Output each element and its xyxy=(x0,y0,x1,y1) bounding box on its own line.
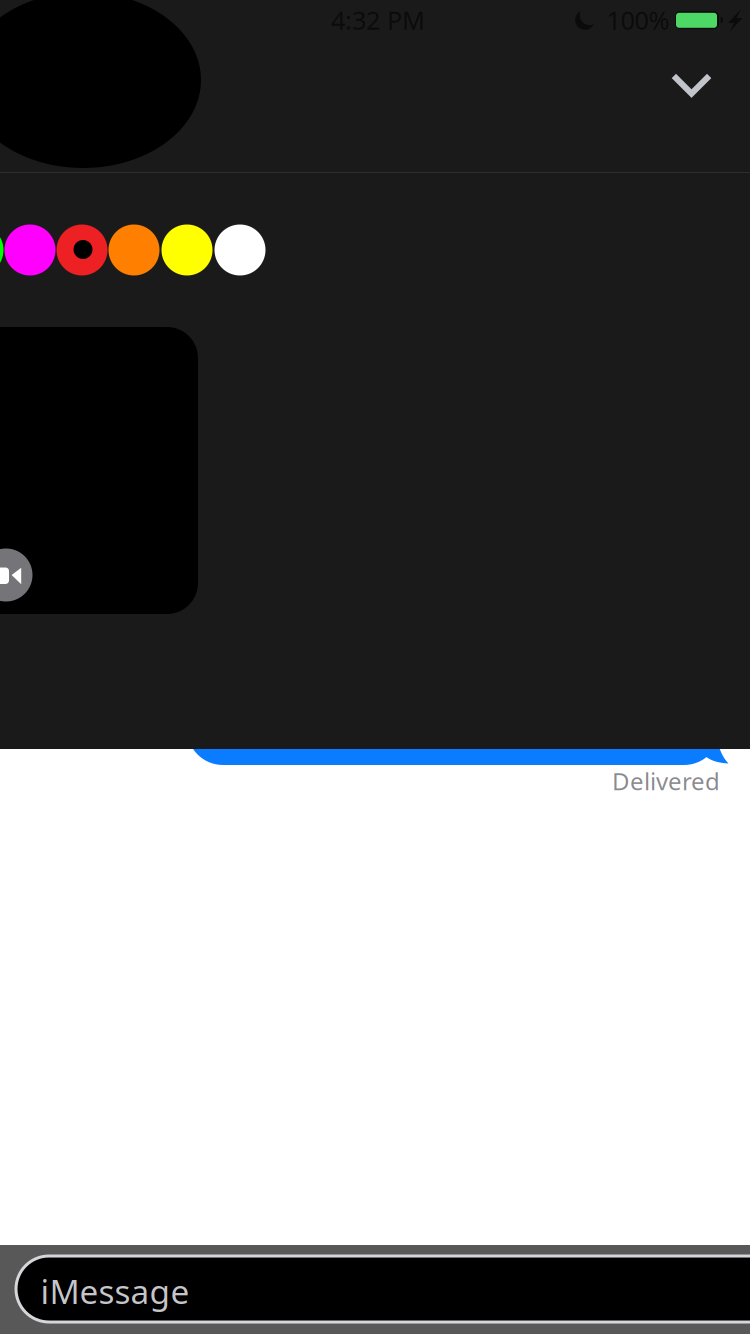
staticText: 100% xyxy=(606,3,669,37)
button[interactable]: Collapse xyxy=(0,0,750,160)
staticText: Delivered xyxy=(612,765,720,797)
button[interactable]: Play video xyxy=(0,548,32,601)
button[interactable]: Red xyxy=(56,224,107,275)
staticText: 4:32 PM xyxy=(331,3,425,37)
button[interactable]: Green xyxy=(0,224,3,275)
button[interactable]: Yellow xyxy=(161,224,212,275)
staticText: iMessage xyxy=(40,1269,189,1313)
button[interactable]: iMessage text field xyxy=(16,1256,750,1322)
button[interactable]: White xyxy=(214,224,265,275)
button[interactable]: Orange xyxy=(108,224,159,275)
button[interactable]: Magenta xyxy=(4,224,55,275)
